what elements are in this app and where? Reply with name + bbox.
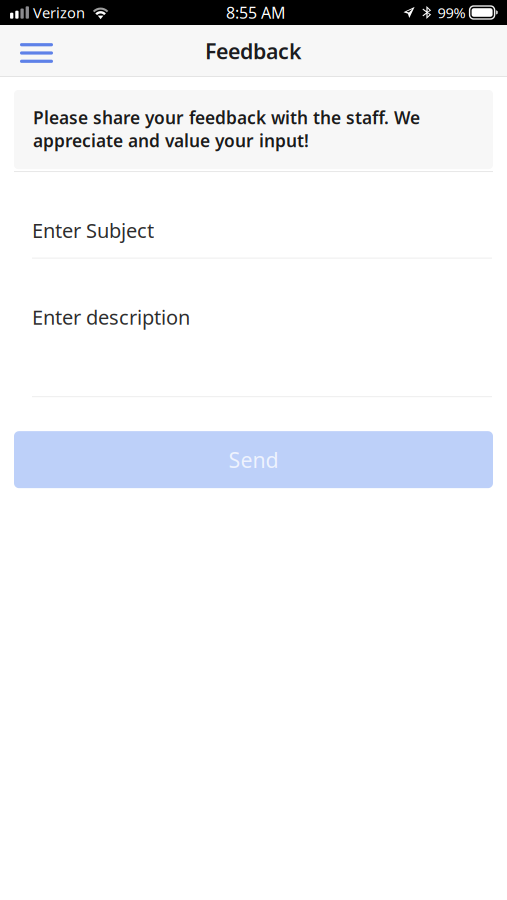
button[interactable]: Enter description bbox=[32, 259, 492, 397]
staticText: Feedback bbox=[205, 37, 302, 65]
staticText: 8:55 AM bbox=[226, 2, 286, 23]
button[interactable]: Enter Subject bbox=[32, 172, 492, 259]
staticText: Verizon bbox=[33, 3, 85, 22]
button[interactable]: Menu bbox=[0, 25, 69, 77]
button[interactable]: Send bbox=[14, 431, 493, 488]
staticText: Enter description bbox=[32, 304, 190, 330]
staticText: 99% bbox=[438, 3, 466, 22]
staticText: Please share your feedback with the staf… bbox=[33, 106, 420, 152]
staticText: Send bbox=[228, 445, 278, 474]
staticText: Enter Subject bbox=[32, 217, 154, 244]
